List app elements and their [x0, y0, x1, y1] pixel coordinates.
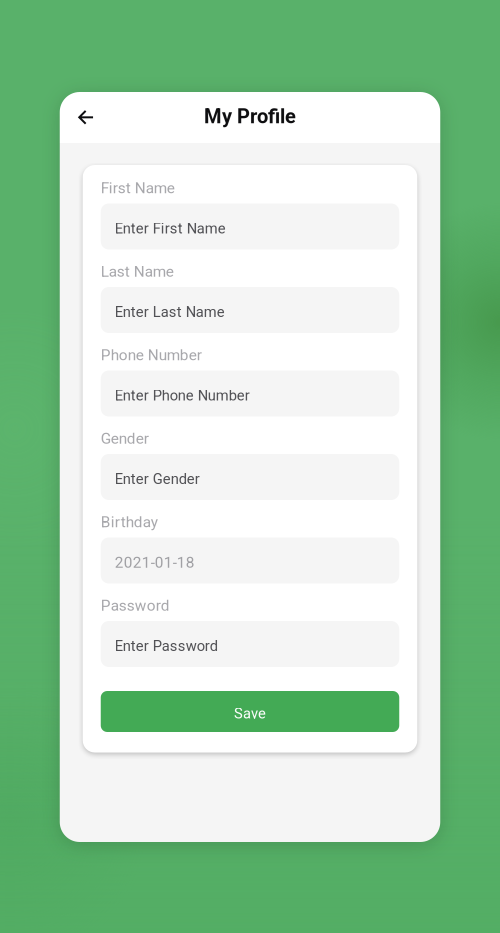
staticText: Last Name [101, 262, 174, 280]
button[interactable]: Back [64, 95, 108, 139]
staticText: Enter Gender [115, 470, 200, 488]
staticText: My Profile [204, 105, 296, 128]
staticText: Enter Phone Number [115, 387, 250, 404]
staticText: Enter First Name [115, 220, 226, 237]
staticText: Save [234, 705, 266, 722]
staticText: 2021-01-18 [115, 553, 195, 571]
staticText: Birthday [101, 513, 158, 531]
staticText: Enter Password [115, 637, 218, 655]
staticText: Phone Number [101, 346, 202, 364]
staticText: Gender [101, 429, 149, 447]
button[interactable]: Save [101, 691, 399, 732]
staticText: Password [101, 596, 170, 614]
staticText: Enter Last Name [115, 303, 225, 321]
staticText: First Name [101, 179, 175, 197]
